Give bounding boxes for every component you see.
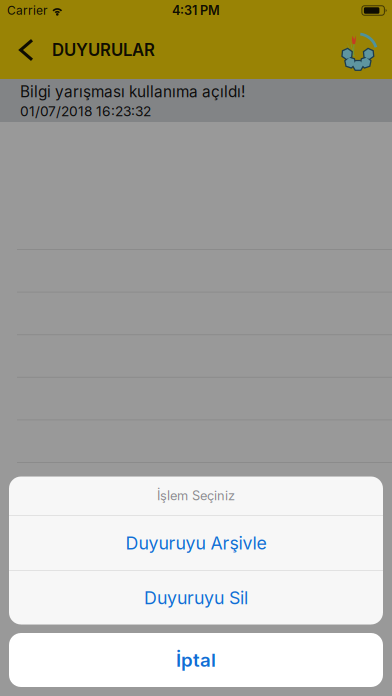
- staticText: Carrier: [7, 3, 48, 18]
- button[interactable]: İptal: [9, 633, 383, 687]
- button[interactable]: Duyuruyu Arşivle: [9, 516, 383, 570]
- staticText: Duyuruyu Sil: [144, 587, 248, 609]
- staticText: DUYURULAR: [52, 40, 155, 60]
- staticText: Duyuruyu Arşivle: [125, 532, 266, 554]
- staticText: Bilgi yarışması kullanıma açıldı!: [20, 82, 245, 101]
- staticText: 01/07/2018 16:23:32: [20, 103, 151, 120]
- button[interactable]: Geri: [0, 21, 52, 79]
- button[interactable]: Kurum logosu: [341, 27, 392, 72]
- staticText: 4:31 PM: [172, 3, 220, 18]
- button[interactable]: Bilgi yarışması kullanıma açıldı!: [0, 79, 392, 122]
- staticText: İptal: [176, 649, 216, 671]
- button[interactable]: Duyuruyu Sil: [9, 571, 383, 625]
- staticText: İşlem Seçiniz: [157, 488, 235, 503]
